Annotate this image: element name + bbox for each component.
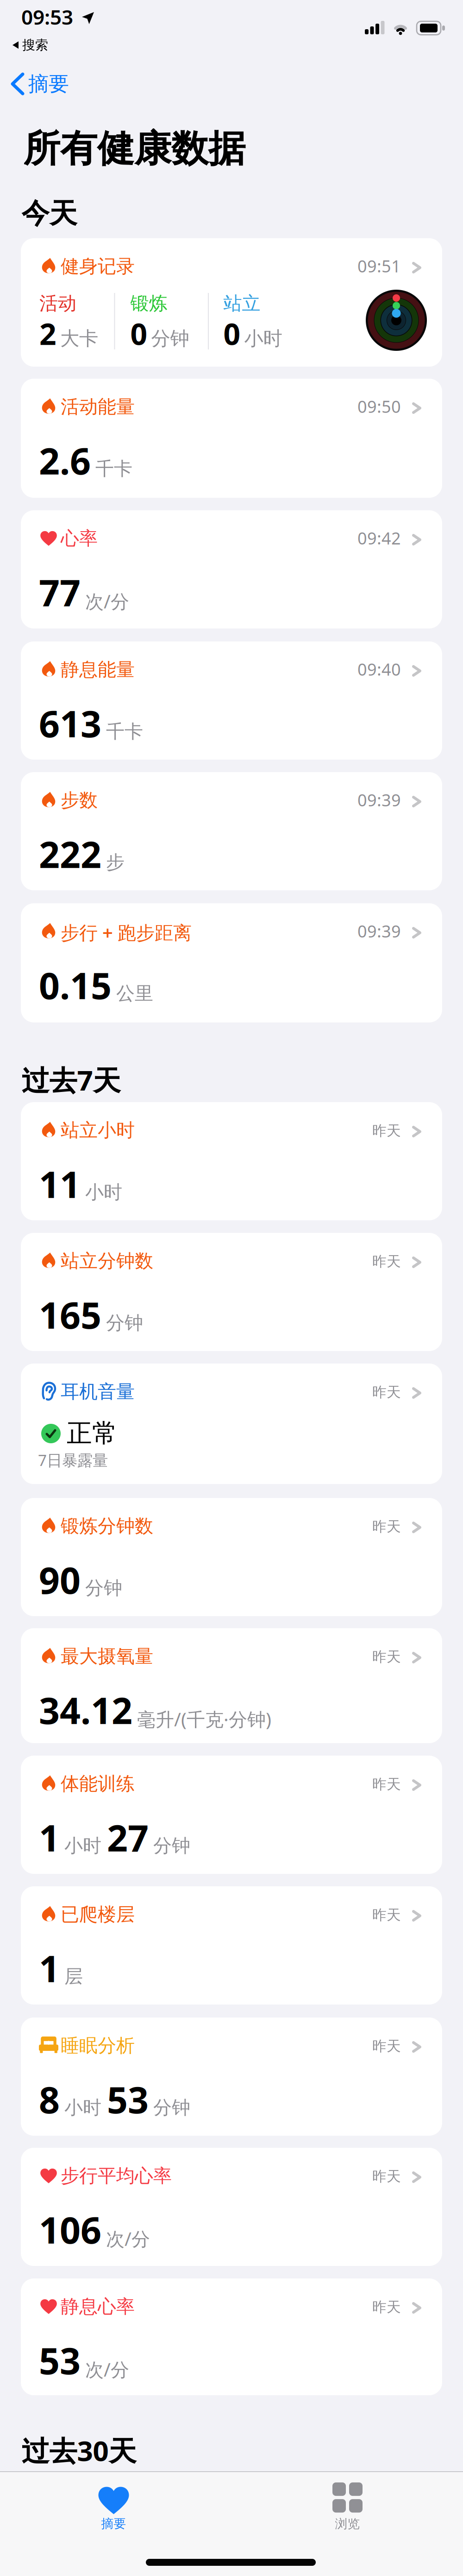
staticText: 锻炼: [130, 292, 167, 315]
staticText: 77: [39, 568, 81, 616]
button[interactable]: 步行 + 跑步距离: [21, 903, 442, 1022]
staticText: 分钟: [153, 2096, 190, 2119]
staticText: 步行平均心率: [61, 2164, 172, 2187]
staticText: 53: [107, 2075, 149, 2123]
staticText: 1: [39, 1813, 60, 1862]
button[interactable]: 活动能量: [21, 379, 442, 498]
staticText: 昨天: [372, 1518, 401, 1535]
staticText: 昨天: [372, 1253, 401, 1270]
staticText: 毫升/(千克·分钟): [137, 1707, 271, 1731]
button[interactable]: 步数: [21, 772, 442, 890]
button[interactable]: 浏览: [292, 2481, 403, 2532]
staticText: 静息心率: [61, 2295, 135, 2318]
staticText: 静息能量: [61, 658, 135, 681]
staticText: 今天: [22, 197, 77, 231]
staticText: 次/分: [106, 2226, 150, 2251]
staticText: 小时: [85, 1181, 122, 1204]
staticText: 健身记录: [61, 255, 135, 278]
staticText: 体能训练: [61, 1772, 135, 1795]
button[interactable]: 静息心率: [21, 2278, 442, 2395]
staticText: 站立小时: [61, 1119, 135, 1142]
button[interactable]: 返回搜索: [13, 37, 48, 53]
staticText: 165: [39, 1290, 101, 1339]
staticText: 过去30天: [22, 2432, 136, 2469]
staticText: 613: [39, 699, 101, 747]
button[interactable]: 体能训练: [21, 1756, 442, 1874]
staticText: 27: [107, 1813, 149, 1862]
staticText: 小时: [64, 2096, 101, 2119]
staticText: 222: [39, 830, 101, 878]
button[interactable]: 站立小时: [21, 1102, 442, 1220]
button[interactable]: 最大摄氧量: [21, 1628, 442, 1743]
staticText: 锻炼分钟数: [61, 1515, 153, 1537]
staticText: 浏览: [335, 2516, 360, 2531]
staticText: 昨天: [372, 2168, 401, 2185]
staticText: 摘要: [28, 71, 69, 96]
staticText: 昨天: [372, 1122, 401, 1140]
button[interactable]: 已爬楼层: [21, 1886, 442, 2005]
staticText: 小时: [64, 1834, 101, 1857]
staticText: 09:39: [357, 789, 401, 811]
staticText: 昨天: [372, 1906, 401, 1924]
staticText: 106: [39, 2205, 101, 2254]
staticText: 分钟: [85, 1577, 122, 1599]
staticText: 千卡: [106, 720, 143, 743]
staticText: 90: [39, 1555, 81, 1604]
staticText: 0: [130, 314, 147, 353]
staticText: 摘要: [101, 2516, 126, 2531]
staticText: 站立: [223, 292, 260, 315]
staticText: 小时: [244, 327, 282, 350]
staticText: 搜索: [22, 37, 48, 53]
staticText: 所有健康数据: [23, 126, 245, 172]
staticText: 09:39: [357, 920, 401, 942]
button[interactable]: 睡眠分析: [21, 2018, 442, 2136]
staticText: 11: [39, 1160, 81, 1208]
staticText: 0: [223, 314, 241, 353]
staticText: 分钟: [153, 1834, 190, 1857]
staticText: 昨天: [372, 2037, 401, 2055]
button[interactable]: 锻炼分钟数: [21, 1498, 442, 1616]
staticText: 已爬楼层: [61, 1903, 135, 1926]
button[interactable]: 步行平均心率: [21, 2148, 442, 2266]
staticText: 步数: [61, 789, 98, 812]
staticText: 2: [39, 314, 56, 353]
staticText: 09:42: [357, 527, 401, 549]
staticText: 层: [64, 1965, 83, 1988]
staticText: 最大摄氧量: [61, 1645, 153, 1668]
staticText: 0.15: [39, 961, 112, 1009]
staticText: 大卡: [60, 327, 98, 350]
staticText: 步行 + 跑步距离: [61, 920, 192, 945]
staticText: 昨天: [372, 1648, 401, 1666]
staticText: 09:40: [357, 658, 401, 680]
staticText: 34.12: [39, 1686, 132, 1734]
button[interactable]: 返回摘要: [13, 71, 69, 96]
button[interactable]: 耳机音量: [21, 1364, 442, 1484]
button[interactable]: 心率: [21, 510, 442, 628]
button[interactable]: 健身记录: [21, 238, 442, 367]
staticText: 睡眠分析: [61, 2034, 135, 2057]
staticText: 昨天: [372, 1776, 401, 1793]
staticText: 公里: [116, 982, 153, 1005]
staticText: 站立分钟数: [61, 1250, 153, 1272]
staticText: 分钟: [106, 1312, 143, 1334]
staticText: 次/分: [85, 589, 129, 614]
button[interactable]: 摘要: [58, 2481, 169, 2532]
staticText: 7日暴露量: [38, 1450, 108, 1470]
staticText: 次/分: [85, 2357, 129, 2382]
staticText: 正常: [67, 1418, 118, 1449]
staticText: 过去7天: [22, 1061, 121, 1098]
staticText: 09:51: [357, 255, 401, 277]
staticText: 千卡: [95, 457, 132, 480]
staticText: 分钟: [151, 327, 189, 350]
staticText: 09:53: [21, 3, 73, 30]
staticText: 昨天: [372, 2298, 401, 2316]
staticText: 53: [39, 2336, 81, 2384]
staticText: 心率: [61, 527, 98, 550]
button[interactable]: 静息能量: [21, 641, 442, 760]
button[interactable]: 站立分钟数: [21, 1233, 442, 1351]
staticText: 1: [39, 1944, 60, 1992]
staticText: 活动: [39, 292, 76, 315]
staticText: 耳机音量: [61, 1380, 135, 1403]
staticText: 2.6: [39, 436, 91, 485]
staticText: 8: [39, 2075, 60, 2123]
